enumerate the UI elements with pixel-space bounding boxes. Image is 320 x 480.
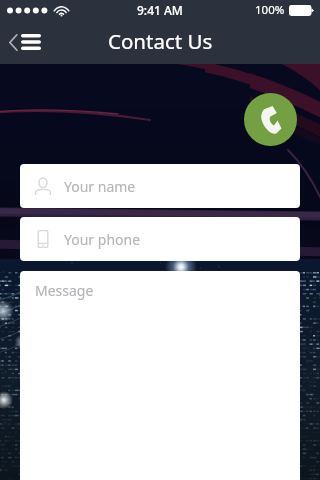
button[interactable]: Your name: [20, 164, 300, 208]
button[interactable]: Call us: [244, 93, 297, 146]
staticText: Your name: [64, 177, 136, 196]
staticText: 9:41 AM: [137, 2, 183, 18]
staticText: Contact Us: [108, 27, 213, 55]
staticText: 100%: [255, 2, 285, 18]
staticText: Message: [35, 281, 94, 300]
button[interactable]: Your phone: [20, 217, 300, 261]
button[interactable]: Menu: [9, 20, 41, 64]
button[interactable]: Message: [20, 271, 300, 480]
staticText: Your phone: [64, 230, 141, 249]
